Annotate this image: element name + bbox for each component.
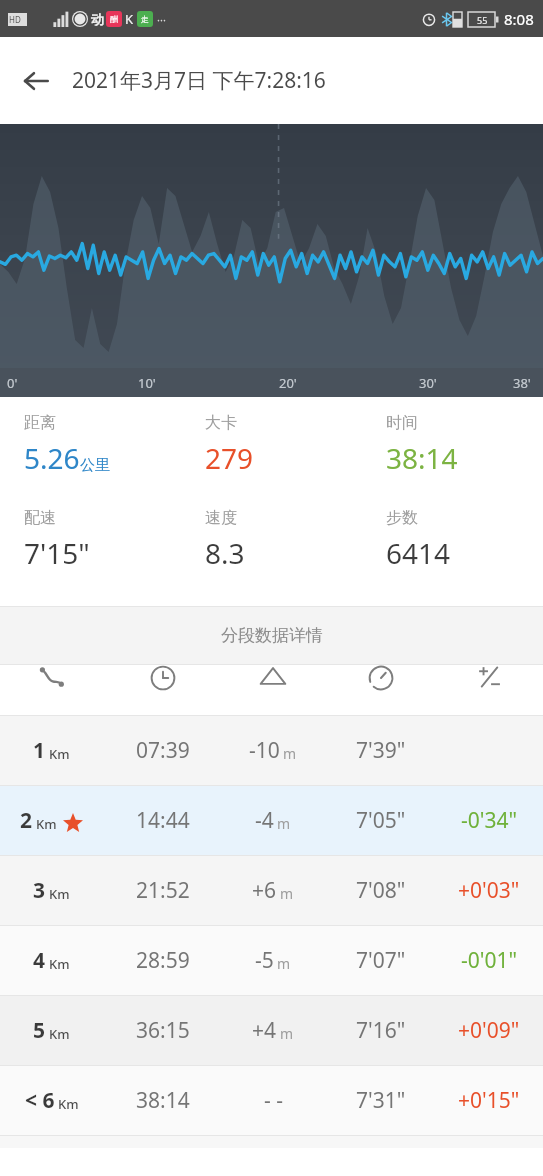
button[interactable]: < 6 (0, 1066, 543, 1135)
staticText: 36:15 (136, 1016, 190, 1045)
staticText: 走 (141, 14, 149, 24)
staticText: -4 (255, 806, 274, 835)
staticText: 7'31" (356, 1086, 406, 1115)
staticText: 38:14 (136, 1086, 190, 1115)
staticText: 7'05" (356, 806, 406, 835)
staticText: 动 (91, 11, 104, 27)
staticText: 28:59 (136, 946, 190, 975)
staticText: 步数 (386, 508, 418, 528)
staticText: 8:08 (504, 9, 534, 29)
staticText: 21:52 (136, 876, 190, 905)
button[interactable]: 2 (0, 786, 543, 855)
staticText: 公里 (80, 456, 110, 475)
staticText: Km (49, 955, 70, 973)
staticText: 14:44 (136, 806, 190, 835)
staticText: 大卡 (205, 413, 237, 433)
staticText: +0'15" (458, 1086, 520, 1115)
staticText: 30' (419, 374, 437, 392)
button[interactable]: Back (12, 57, 60, 105)
staticText: m (277, 814, 291, 833)
staticText: 20' (279, 374, 297, 392)
staticText: < 6 (25, 1086, 55, 1115)
staticText: 279 (205, 439, 254, 477)
staticText: -0'34" (461, 806, 518, 835)
staticText: Km (58, 1095, 79, 1113)
staticText: Km (49, 885, 70, 903)
staticText: 1 (33, 736, 46, 765)
staticText: 0' (7, 374, 18, 392)
staticText: -0'01" (461, 946, 518, 975)
staticText: +0'03" (458, 876, 520, 905)
staticText: 55 (477, 14, 488, 26)
staticText: m (283, 744, 297, 763)
staticText: 38' (513, 374, 531, 392)
staticText: 5.26 (24, 439, 80, 477)
staticText: 距离 (24, 413, 56, 433)
button[interactable]: 1 (0, 716, 543, 785)
staticText: 8.3 (205, 534, 245, 572)
staticText: - - (264, 1086, 283, 1115)
staticText: HD (9, 14, 21, 25)
staticText: 速度 (205, 508, 237, 528)
staticText: 2 (20, 806, 33, 835)
staticText: 10' (138, 374, 156, 392)
staticText: -10 (249, 736, 280, 765)
staticText: 7'15" (24, 534, 90, 572)
staticText: 分段数据详情 (221, 625, 323, 646)
staticText: 7'39" (356, 736, 406, 765)
staticText: 酬 (110, 14, 118, 24)
staticText: +4 (252, 1016, 277, 1045)
staticText: m (277, 954, 291, 973)
staticText: 3 (33, 876, 46, 905)
staticText: m (280, 884, 294, 903)
staticText: 38:14 (386, 439, 458, 477)
staticText: Km (49, 745, 70, 763)
staticText: +6 (252, 876, 277, 905)
staticText: Km (36, 815, 57, 833)
staticText: 4 (33, 946, 46, 975)
staticText: m (280, 1024, 294, 1043)
staticText: ··· (157, 12, 166, 27)
staticText: K (125, 10, 134, 28)
button[interactable]: 3 (0, 856, 543, 925)
staticText: 6414 (386, 534, 451, 572)
staticText: 7'16" (356, 1016, 406, 1045)
staticText: 7'08" (356, 876, 406, 905)
button[interactable]: 5 (0, 996, 543, 1065)
staticText: 5 (33, 1016, 46, 1045)
staticText: 2021年3月7日 下午7:28:16 (72, 66, 326, 95)
staticText: 时间 (386, 413, 418, 433)
staticText: 7'07" (356, 946, 406, 975)
staticText: -5 (255, 946, 274, 975)
button[interactable]: 4 (0, 926, 543, 995)
staticText: 07:39 (136, 736, 190, 765)
staticText: +0'09" (458, 1016, 520, 1045)
staticText: Km (49, 1025, 70, 1043)
staticText: 配速 (24, 508, 56, 528)
